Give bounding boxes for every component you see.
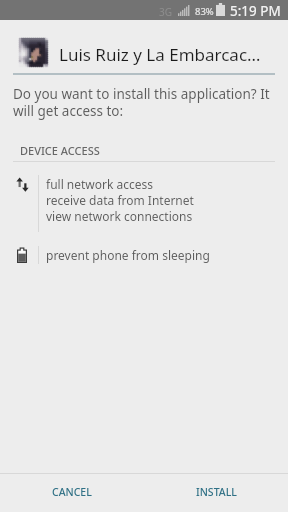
staticText: 83% [195,5,214,18]
button[interactable]: CANCEL [0,474,144,512]
staticText: Do you want to install this application?… [13,85,275,120]
staticText: Luis Ruiz y La Embarcac… [59,43,279,66]
staticText: 5:19 PM [230,2,281,20]
other: Network access [16,177,29,192]
staticText: DEVICE ACCESS [20,143,100,158]
button[interactable]: INSTALL [144,474,288,512]
staticText: CANCEL [52,485,92,499]
staticText: prevent phone from sleeping [46,247,210,263]
staticText: 3G [159,5,172,19]
staticText: INSTALL [196,485,237,499]
other: Prevent phone from sleeping [17,247,27,263]
staticText: full network access [46,176,154,192]
staticText: view network connections [46,208,193,224]
staticText: receive data from Internet [46,192,194,208]
